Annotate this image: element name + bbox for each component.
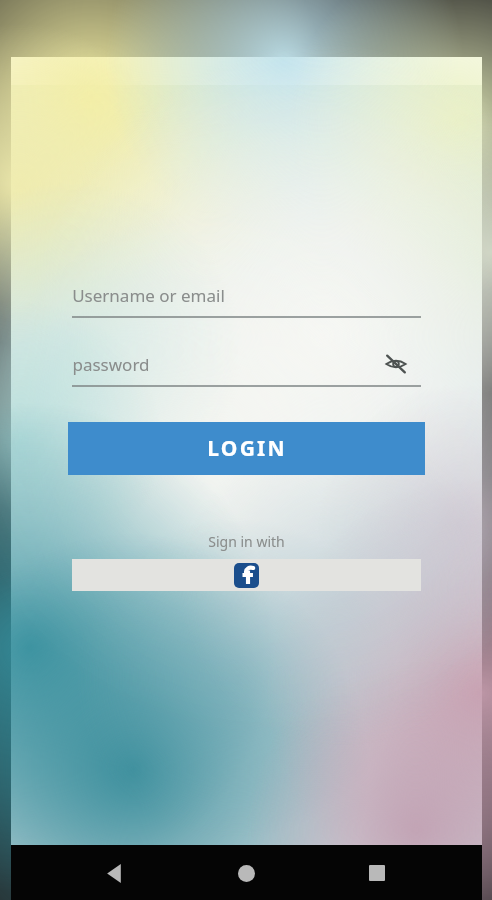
button[interactable]: Username or email	[72, 278, 421, 318]
button[interactable]: LOGIN	[68, 422, 425, 475]
button[interactable]: Home	[220, 847, 272, 899]
staticText: Username or email	[72, 284, 225, 307]
button[interactable]: password	[72, 347, 421, 387]
button[interactable]: Recent apps	[351, 847, 403, 899]
button[interactable]: Back	[89, 847, 141, 899]
button[interactable]: Show password	[383, 351, 409, 377]
button[interactable]: Sign in with Facebook	[72, 559, 421, 591]
staticText: Sign in with	[208, 532, 285, 551]
staticText: LOGIN	[207, 434, 287, 463]
staticText: password	[72, 353, 150, 376]
